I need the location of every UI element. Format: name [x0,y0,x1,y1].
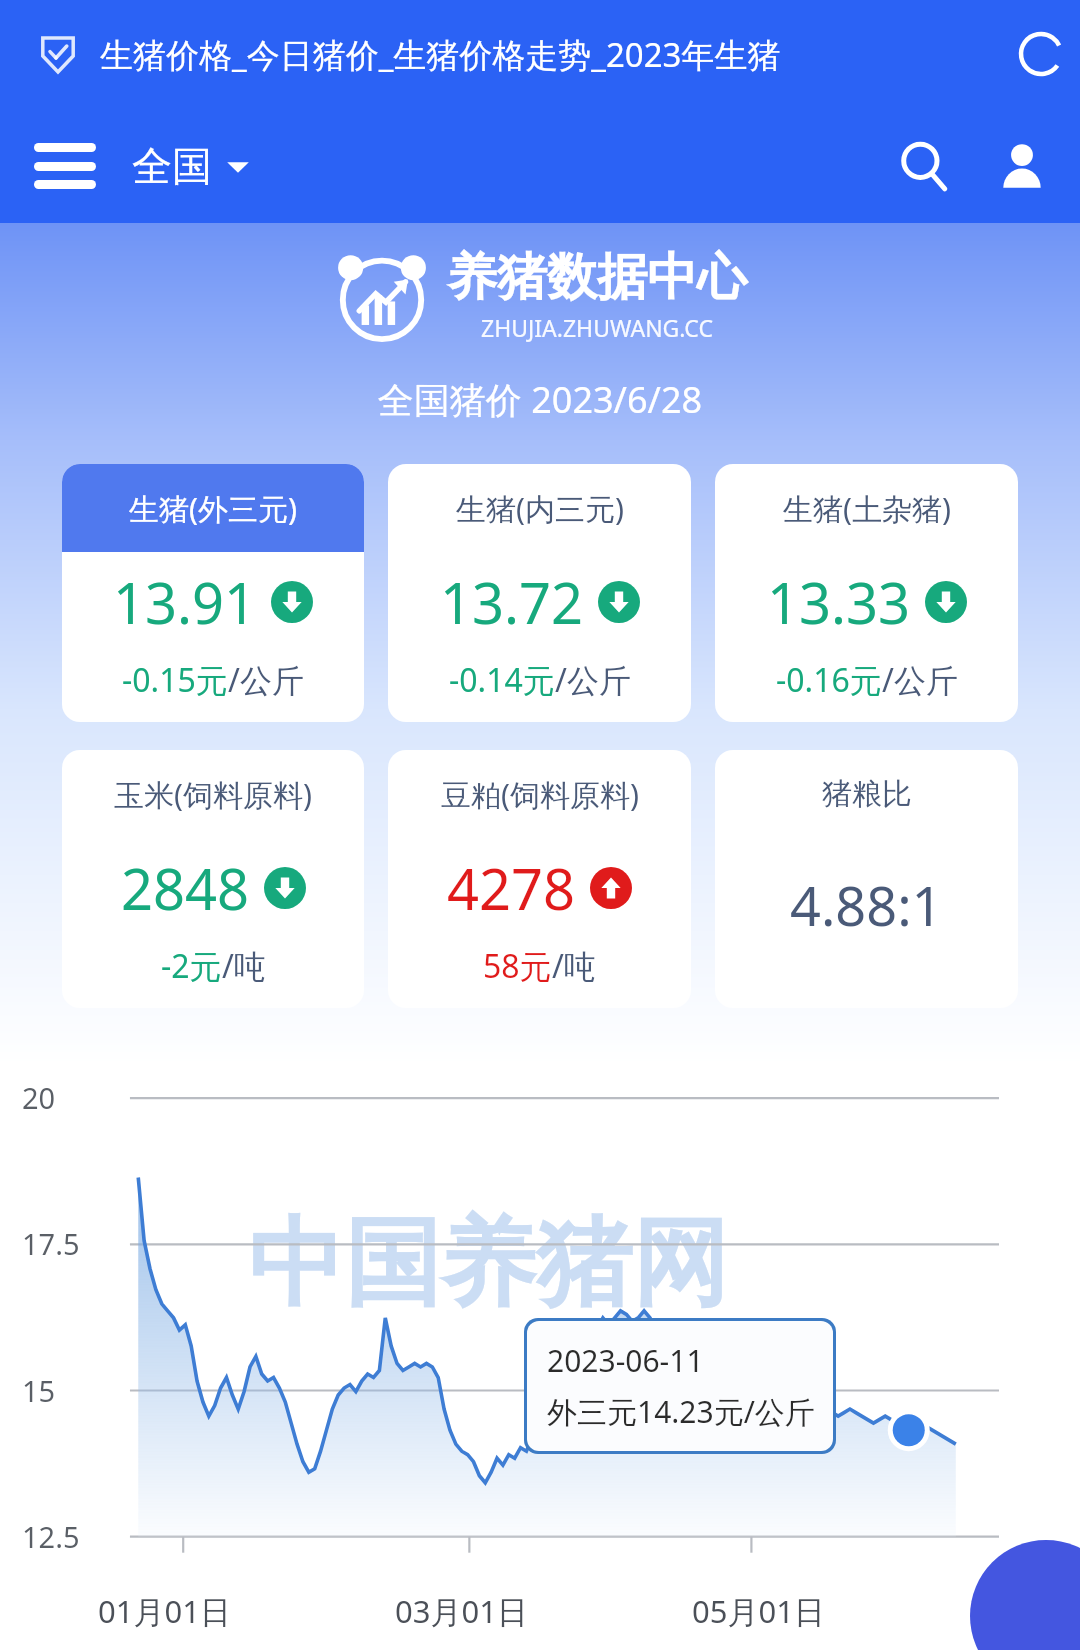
button[interactable]: Refresh [1018,31,1064,77]
staticText: 外三元14.23元/公斤 [547,1391,815,1432]
staticText: /公斤 [228,658,304,702]
staticText: ZHUJIA.ZHUWANG.CC [481,312,713,343]
button[interactable]: Scroll to top [970,1540,1080,1650]
button[interactable]: 全国 [132,141,250,191]
staticText: 全国猪价 2023/6/28 [0,375,1080,424]
staticText: -0.16元 [776,658,882,702]
staticText: -0.15元 [122,658,228,702]
staticText: 2848 [121,850,250,926]
staticText: 12.5 [22,1517,80,1556]
staticText: 20 [22,1078,56,1117]
staticText: 生猪(外三元) [129,488,297,529]
staticText: 养猪数据中心 [447,246,747,309]
staticText: 生猪价格_今日猪价_生猪价格走势_2023年生猪 [100,32,781,77]
button[interactable]: 豆粕(饲料原料) [388,750,691,1008]
staticText: 13.72 [440,564,584,640]
button[interactable]: Search [898,140,950,192]
button[interactable]: 猪粮比 [715,750,1018,1008]
staticText: /吨 [552,944,596,988]
staticText: 03月01日 [395,1590,528,1632]
staticText: 4.88:1 [790,868,943,942]
staticText: 生猪(土杂猪) [783,488,951,529]
staticText: 2023-06-11 [547,1340,704,1381]
button[interactable]: Secure [38,34,78,74]
button[interactable]: Menu [34,143,96,189]
button[interactable]: 生猪(外三元) [62,464,364,722]
staticText: 13.91 [113,564,257,640]
staticText: -0.14元 [449,658,555,702]
button[interactable]: Account [996,140,1048,192]
staticText: /公斤 [555,658,631,702]
staticText: /公斤 [882,658,958,702]
staticText: 猪粮比 [822,775,912,813]
staticText: 中国养猪网 [248,1204,728,1325]
staticText: 15 [22,1371,56,1410]
button[interactable]: 生猪(土杂猪) [715,464,1018,722]
staticText: 01月01日 [98,1590,231,1632]
staticText: 4278 [447,850,576,926]
staticText: 生猪(内三元) [456,488,624,529]
staticText: 58元 [483,944,552,988]
staticText: -2元 [161,944,222,988]
staticText: 全国 [132,141,212,191]
button[interactable]: 生猪(内三元) [388,464,691,722]
button[interactable]: 玉米(饲料原料) [62,750,364,1008]
staticText: 玉米(饲料原料) [114,774,312,815]
staticText: 豆粕(饲料原料) [441,774,639,815]
staticText: /吨 [222,944,266,988]
staticText: 13.33 [767,564,911,640]
staticText: 17.5 [22,1224,80,1263]
staticText: 05月01日 [692,1590,825,1632]
